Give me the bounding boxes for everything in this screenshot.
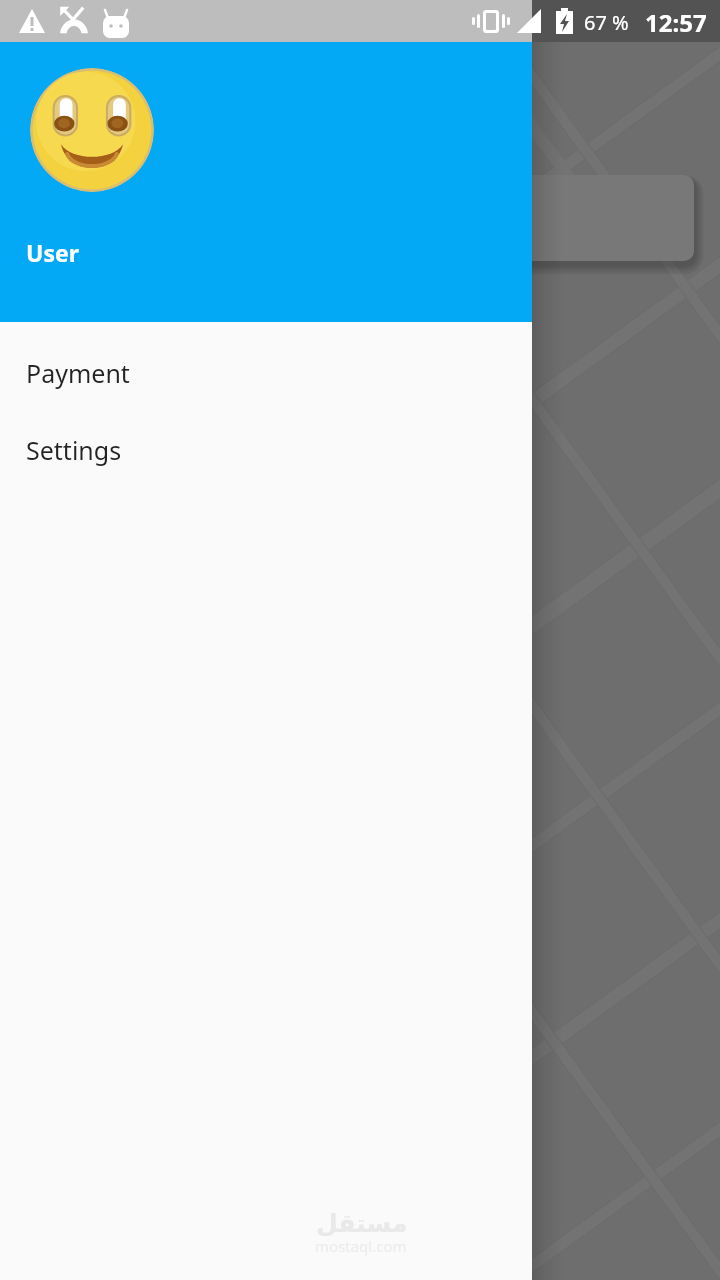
staticText: User (26, 237, 79, 268)
staticText: 12:57 (645, 6, 707, 39)
staticText: Settings (26, 433, 122, 467)
staticText: mostaql.com (315, 1236, 407, 1256)
button[interactable]: Settings (0, 411, 532, 488)
button[interactable]: Payment (0, 334, 532, 411)
button[interactable]: User (26, 237, 79, 268)
button[interactable]: Search (446, 175, 694, 261)
staticText: Payment (26, 356, 130, 390)
staticText: مستقل (316, 1209, 408, 1238)
button[interactable]: Profile picture (30, 68, 154, 192)
staticText: 67 % (584, 9, 629, 36)
